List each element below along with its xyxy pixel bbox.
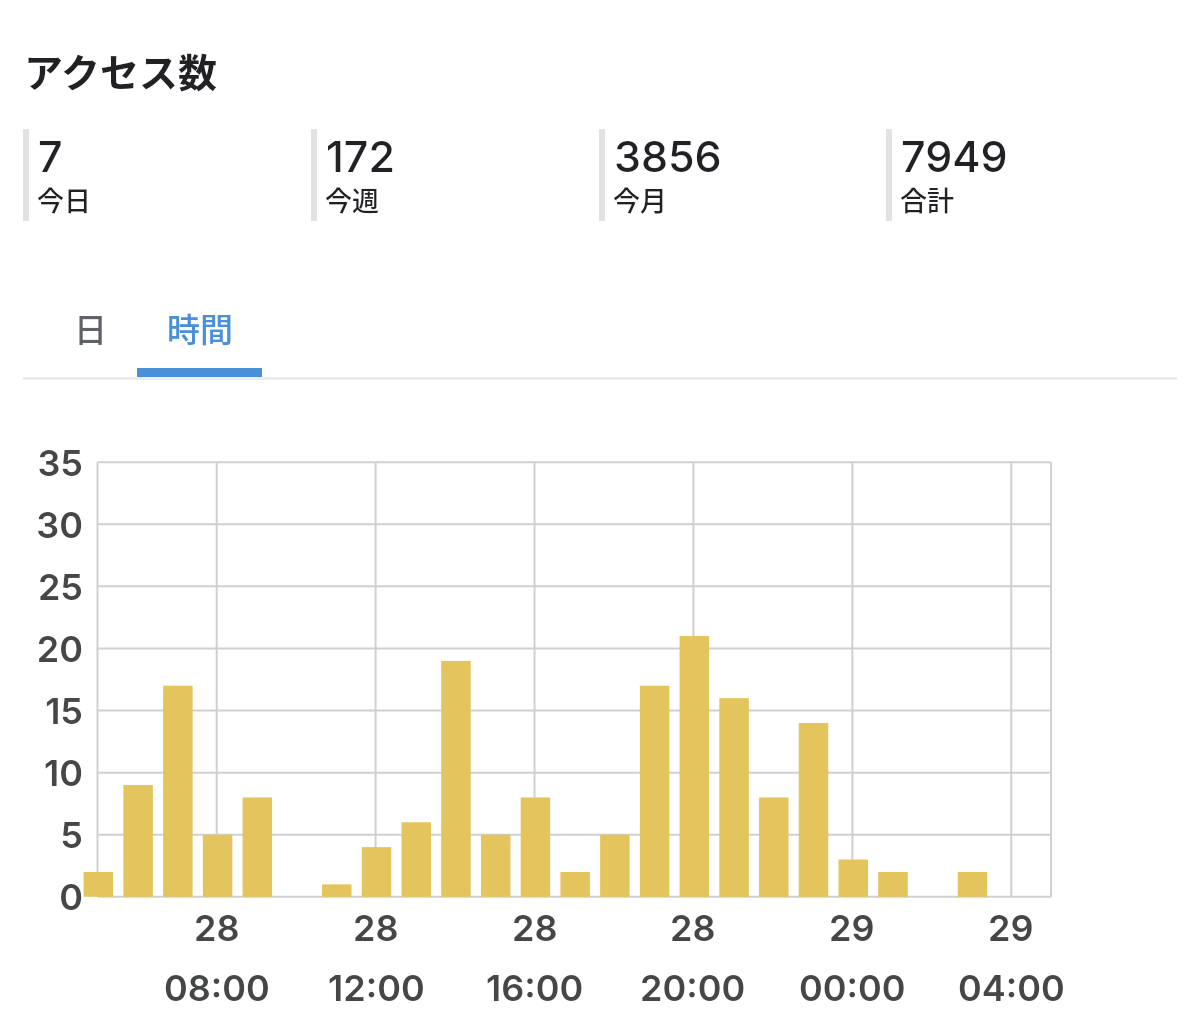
staticText: 15 bbox=[45, 689, 83, 733]
staticText: 7 bbox=[38, 130, 63, 182]
staticText: 12:00 bbox=[328, 966, 425, 1010]
staticText: 25 bbox=[37, 565, 83, 609]
staticText: 16:00 bbox=[486, 966, 584, 1010]
button[interactable]: 3856 bbox=[599, 129, 886, 221]
staticText: 時間 bbox=[167, 304, 233, 352]
staticText: 3856 bbox=[614, 130, 722, 182]
staticText: 28 bbox=[353, 906, 399, 950]
staticText: 20 bbox=[36, 627, 83, 671]
staticText: 今日 bbox=[37, 180, 91, 219]
staticText: 10 bbox=[44, 751, 83, 795]
staticText: 合計 bbox=[900, 180, 954, 219]
staticText: 30 bbox=[36, 503, 83, 547]
staticText: 04:00 bbox=[958, 966, 1065, 1010]
other: Hourly visits bar chart bbox=[0, 440, 1200, 920]
staticText: 29 bbox=[829, 906, 875, 950]
staticText: 0 bbox=[59, 875, 83, 919]
staticText: 20:00 bbox=[640, 966, 746, 1010]
staticText: 今月 bbox=[613, 180, 667, 219]
staticText: 5 bbox=[60, 813, 83, 857]
staticText: アクセス数 bbox=[24, 42, 218, 98]
button[interactable]: 時間 bbox=[137, 289, 262, 377]
staticText: 日 bbox=[74, 304, 107, 352]
staticText: 28 bbox=[194, 906, 240, 950]
staticText: 172 bbox=[326, 130, 395, 182]
button[interactable]: 172 bbox=[311, 129, 598, 221]
button[interactable]: 日 bbox=[43, 289, 137, 377]
staticText: 29 bbox=[988, 906, 1034, 950]
staticText: 28 bbox=[512, 906, 558, 950]
staticText: 7949 bbox=[901, 130, 1008, 182]
staticText: 今週 bbox=[325, 180, 379, 219]
staticText: 28 bbox=[670, 906, 716, 950]
staticText: 35 bbox=[37, 441, 83, 485]
staticText: 08:00 bbox=[164, 966, 270, 1010]
button[interactable]: 7 bbox=[23, 129, 310, 221]
button[interactable]: 7949 bbox=[886, 129, 1173, 221]
staticText: 00:00 bbox=[799, 966, 906, 1010]
